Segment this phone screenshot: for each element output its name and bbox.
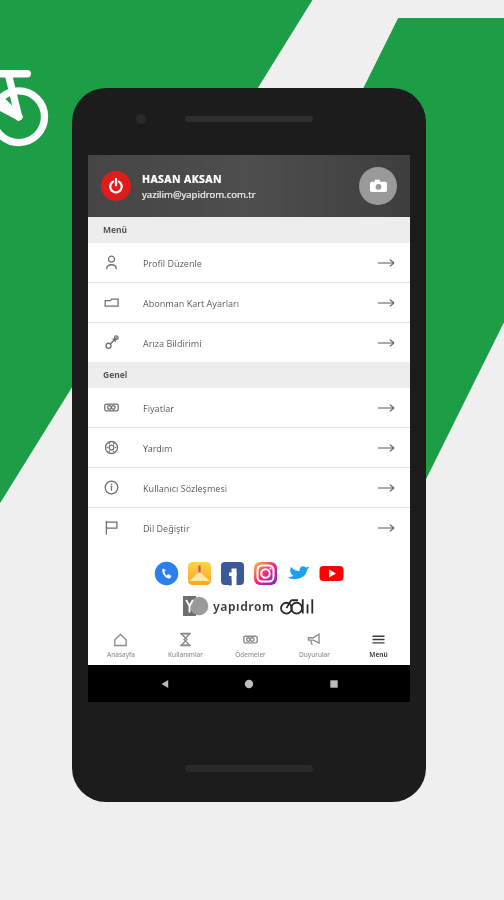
staticText: Genel xyxy=(103,369,128,381)
staticText: Yardım xyxy=(143,442,173,454)
button[interactable]: Telefon xyxy=(154,561,179,586)
staticText: Menü xyxy=(103,224,128,236)
button[interactable]: Arıza Bildirimi xyxy=(88,323,410,362)
other: Back xyxy=(157,676,173,692)
button[interactable]: Kullanıcı Sözleşmesi xyxy=(88,468,410,507)
staticText: Profil Düzenle xyxy=(143,257,202,269)
staticText: Kullanıcı Sözleşmesi xyxy=(143,482,228,494)
other: Home xyxy=(241,676,257,692)
button[interactable]: Dil Değiştir xyxy=(88,508,410,547)
staticText: yapıdrom xyxy=(213,598,275,614)
staticText: Fiyatlar xyxy=(143,402,174,414)
staticText: Duyurular xyxy=(299,650,330,659)
staticText: yazilim@yapidrom.com.tr xyxy=(142,188,256,201)
staticText: HASAN AKSAN xyxy=(142,172,222,186)
button[interactable]: Duyurular xyxy=(282,625,346,665)
button[interactable]: Çıkış xyxy=(101,171,131,201)
button[interactable]: Anasayfa xyxy=(88,625,153,665)
button[interactable]: Kullanımlar xyxy=(153,625,218,665)
staticText: Dil Değiştir xyxy=(143,522,190,534)
button[interactable]: Fotoğraf çek xyxy=(359,167,397,205)
button[interactable]: Ödemeler xyxy=(218,625,282,665)
staticText: Menü xyxy=(369,650,388,659)
staticText: Kullanımlar xyxy=(168,650,203,659)
button[interactable]: Instagram xyxy=(253,561,278,586)
button[interactable]: Fiyatlar xyxy=(88,388,410,427)
button[interactable]: Profil Düzenle xyxy=(88,243,410,282)
button[interactable]: Yardım xyxy=(88,428,410,467)
button[interactable]: Facebook xyxy=(220,561,245,586)
staticText: Arıza Bildirimi xyxy=(143,337,202,349)
staticText: Anasayfa xyxy=(107,650,135,659)
button[interactable]: E-posta xyxy=(187,561,212,586)
button[interactable]: Menü xyxy=(346,625,410,665)
button[interactable]: YouTube xyxy=(319,561,344,586)
other: Recents xyxy=(326,676,342,692)
staticText: Abonman Kart Ayarları xyxy=(143,297,240,309)
staticText: Ödemeler xyxy=(235,650,266,659)
button[interactable]: Abonman Kart Ayarları xyxy=(88,283,410,322)
button[interactable]: Twitter xyxy=(286,561,311,586)
